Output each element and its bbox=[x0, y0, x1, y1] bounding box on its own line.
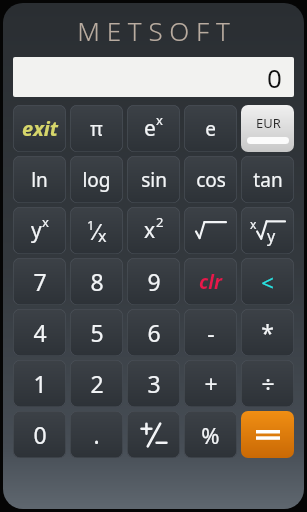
button[interactable]: * bbox=[241, 309, 294, 356]
button[interactable]: . bbox=[70, 411, 123, 458]
button[interactable]: 2 bbox=[70, 360, 123, 407]
button[interactable]: 8 bbox=[70, 258, 123, 305]
staticText: sin bbox=[141, 167, 167, 193]
button[interactable]: 0 bbox=[13, 411, 66, 458]
button[interactable]: x squared bbox=[127, 207, 180, 254]
button[interactable]: 7 bbox=[13, 258, 66, 305]
button[interactable]: ln bbox=[13, 156, 66, 203]
button[interactable]: Currency EUR bbox=[241, 105, 294, 152]
button[interactable]: 9 bbox=[127, 258, 180, 305]
button[interactable]: 4 bbox=[13, 309, 66, 356]
button[interactable]: 1 bbox=[13, 360, 66, 407]
staticText: e bbox=[144, 114, 156, 143]
staticText: log bbox=[82, 167, 111, 193]
staticText: π bbox=[90, 116, 103, 142]
staticText: * bbox=[261, 317, 274, 348]
staticText: 3 bbox=[147, 368, 161, 399]
staticText: 9 bbox=[147, 266, 161, 297]
button[interactable]: - bbox=[184, 309, 237, 356]
button[interactable]: y to the power x bbox=[13, 207, 66, 254]
staticText: y bbox=[267, 225, 276, 247]
button[interactable]: % bbox=[184, 411, 237, 458]
staticText: exit bbox=[22, 115, 58, 142]
staticText: 5 bbox=[90, 317, 104, 348]
staticText: < bbox=[261, 267, 274, 297]
staticText: 2 bbox=[156, 213, 164, 231]
staticText: e bbox=[205, 116, 216, 142]
staticText: 6 bbox=[147, 317, 161, 348]
button[interactable]: plus minus sign bbox=[127, 411, 180, 458]
staticText: 8 bbox=[90, 266, 104, 297]
staticText: ⁄ bbox=[95, 216, 98, 246]
staticText: ÷ bbox=[261, 368, 275, 399]
button[interactable]: π bbox=[70, 105, 123, 152]
staticText: EUR bbox=[256, 114, 281, 132]
staticText: x bbox=[98, 225, 107, 247]
button[interactable]: 5 bbox=[70, 309, 123, 356]
staticText: cos bbox=[196, 167, 226, 193]
button[interactable]: 6 bbox=[127, 309, 180, 356]
button[interactable]: ÷ bbox=[241, 360, 294, 407]
staticText: x bbox=[156, 111, 163, 129]
button[interactable]: square root bbox=[184, 207, 237, 254]
button[interactable]: cos bbox=[184, 156, 237, 203]
button[interactable]: + bbox=[184, 360, 237, 407]
staticText: tan bbox=[253, 167, 283, 193]
button[interactable]: sin bbox=[127, 156, 180, 203]
staticText: x bbox=[250, 216, 257, 232]
button[interactable]: tan bbox=[241, 156, 294, 203]
button[interactable]: clr bbox=[184, 258, 237, 305]
button[interactable]: Equals bbox=[241, 411, 294, 458]
staticText: x bbox=[144, 216, 156, 245]
staticText: - bbox=[207, 317, 215, 348]
staticText: % bbox=[201, 420, 220, 450]
staticText: + bbox=[204, 368, 218, 399]
button[interactable]: log bbox=[70, 156, 123, 203]
staticText: y bbox=[31, 216, 42, 245]
button[interactable]: one over x bbox=[70, 207, 123, 254]
staticText: 4 bbox=[33, 317, 47, 348]
staticText: . bbox=[93, 419, 100, 450]
staticText: clr bbox=[199, 269, 222, 295]
button[interactable]: exit bbox=[13, 105, 66, 152]
button[interactable]: x-th root of y bbox=[241, 207, 294, 254]
button[interactable]: 3 bbox=[127, 360, 180, 407]
staticText: M E T S O F T bbox=[77, 13, 230, 48]
button[interactable]: e to the power x bbox=[127, 105, 180, 152]
button[interactable]: e bbox=[184, 105, 237, 152]
staticText: ln bbox=[31, 167, 48, 193]
staticText: 2 bbox=[90, 368, 104, 399]
staticText: 0 bbox=[267, 60, 282, 95]
staticText: 1 bbox=[87, 216, 95, 234]
staticText: x bbox=[42, 213, 49, 231]
button[interactable]: < bbox=[241, 258, 294, 305]
staticText: 7 bbox=[33, 266, 47, 297]
staticText: 0 bbox=[33, 419, 47, 450]
staticText: 1 bbox=[33, 368, 47, 399]
